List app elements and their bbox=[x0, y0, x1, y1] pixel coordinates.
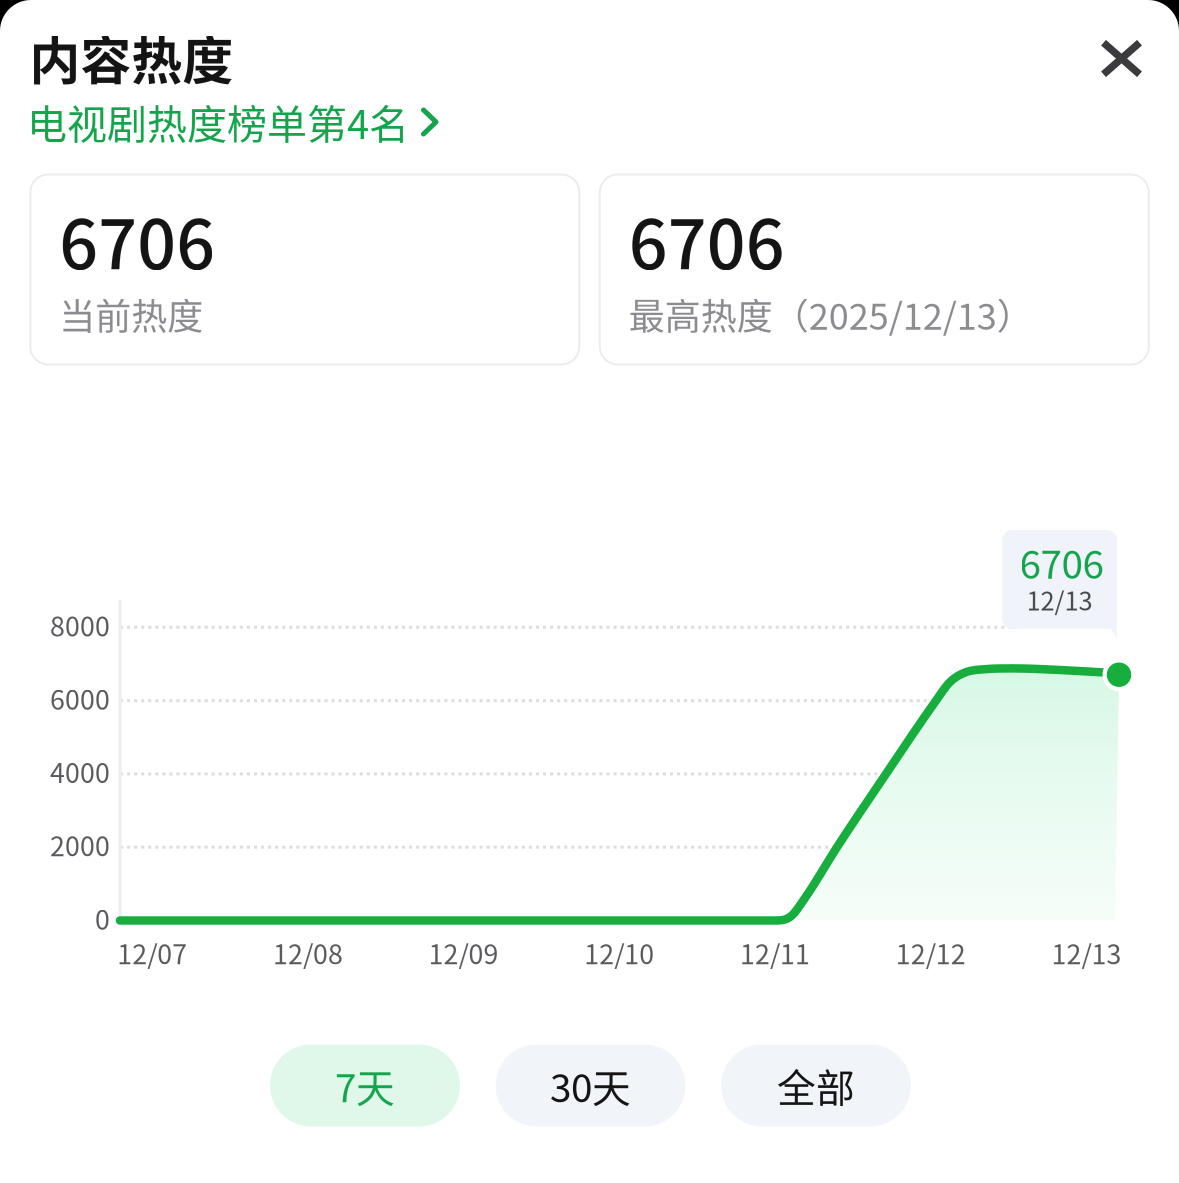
staticText: 6706 bbox=[1019, 534, 1103, 590]
staticText: 0 bbox=[95, 899, 110, 937]
staticText: 最高热度（2025/12/13） bbox=[629, 288, 1033, 340]
staticText: 全部 bbox=[777, 1057, 855, 1113]
staticText: 12/10 bbox=[584, 933, 654, 972]
staticText: 2000 bbox=[50, 825, 110, 864]
staticText: 6706 bbox=[629, 190, 785, 289]
staticText: 12/11 bbox=[740, 933, 810, 972]
staticText: 7天 bbox=[335, 1057, 395, 1113]
button[interactable]: 30天 bbox=[495, 1044, 685, 1126]
button[interactable]: 电视剧热度榜单第4名 bbox=[27, 96, 446, 142]
staticText: 8000 bbox=[50, 605, 110, 644]
staticText: 30天 bbox=[550, 1057, 631, 1113]
staticText: 12/13 bbox=[1026, 581, 1092, 618]
staticText: 4000 bbox=[50, 752, 110, 791]
staticText: 12/12 bbox=[896, 933, 966, 972]
staticText: 12/09 bbox=[429, 933, 499, 972]
staticText: 当前热度 bbox=[59, 288, 203, 340]
staticText: 12/08 bbox=[273, 933, 343, 972]
button[interactable]: 7天 bbox=[270, 1044, 460, 1126]
staticText: 12/13 bbox=[1051, 933, 1121, 972]
staticText: 12/07 bbox=[117, 933, 187, 972]
staticText: 内容热度 bbox=[29, 21, 233, 94]
button[interactable]: 全部 bbox=[721, 1044, 911, 1126]
staticText: 6000 bbox=[50, 679, 110, 717]
staticText: 6706 bbox=[59, 190, 215, 289]
button[interactable]: 关闭 bbox=[1084, 25, 1156, 97]
staticText: 电视剧热度榜单第4名 bbox=[27, 92, 409, 150]
